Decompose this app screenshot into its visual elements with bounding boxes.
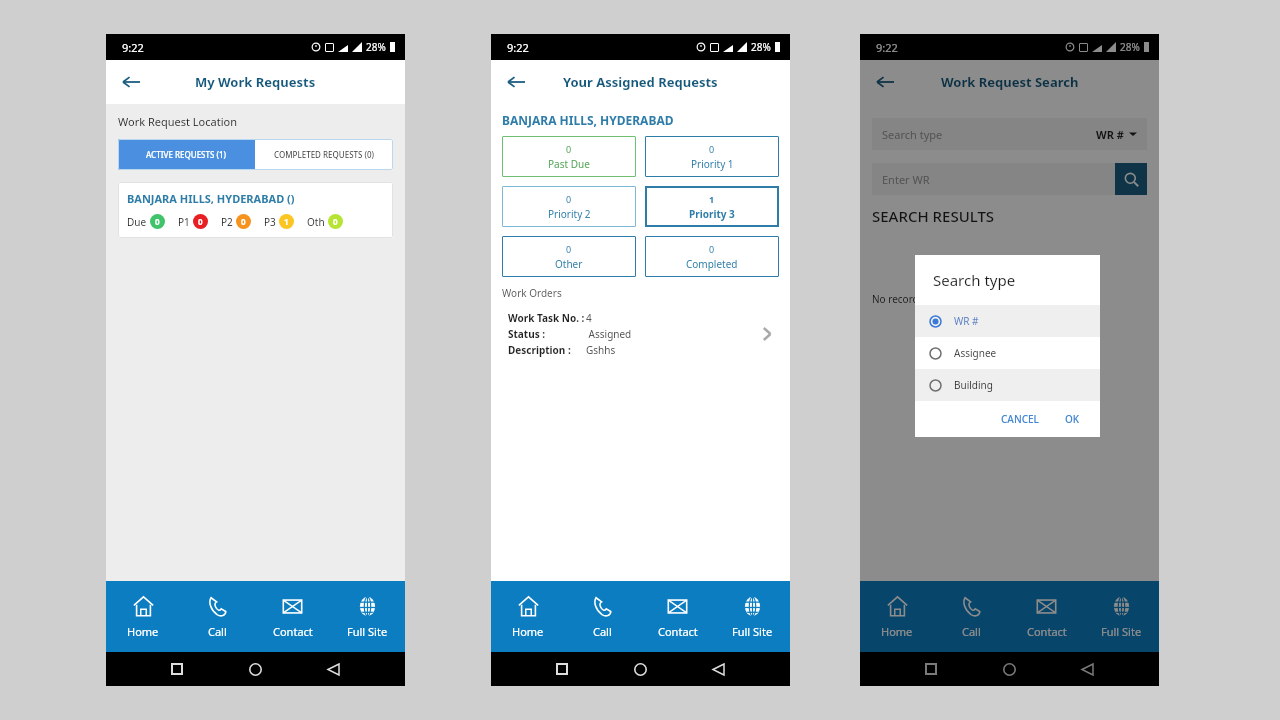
- button[interactable]: Work Task No. :: [502, 310, 779, 358]
- staticText: Oth: [307, 215, 325, 229]
- staticText: 1: [709, 193, 715, 205]
- staticText: Your Assigned Requests: [563, 73, 718, 91]
- button[interactable]: Full Site: [330, 581, 405, 652]
- staticText: Enter WR: [882, 172, 930, 187]
- staticText: Priority 2: [548, 207, 591, 221]
- button[interactable]: Full Site: [715, 581, 790, 652]
- button[interactable]: Home: [249, 663, 262, 676]
- staticText: 0: [566, 193, 572, 205]
- staticText: 9:22: [507, 40, 529, 55]
- staticText: 1: [284, 216, 289, 227]
- staticText: Due: [127, 215, 147, 229]
- staticText: 28%: [751, 40, 771, 54]
- staticText: Call: [593, 624, 612, 639]
- staticText: Contact: [273, 624, 313, 639]
- button[interactable]: 0: [502, 186, 636, 227]
- staticText: Call: [208, 624, 227, 639]
- staticText: Call: [962, 624, 981, 639]
- staticText: Priority 3: [689, 207, 735, 221]
- button[interactable]: Back: [499, 65, 533, 99]
- button[interactable]: Back: [114, 65, 148, 99]
- staticText: Completed: [686, 257, 738, 271]
- staticText: 28%: [1120, 40, 1140, 54]
- staticText: P3: [264, 215, 276, 229]
- staticText: Search type: [933, 270, 1016, 290]
- button[interactable]: Contact: [640, 581, 715, 652]
- button[interactable]: Back: [868, 65, 902, 99]
- staticText: 0: [709, 243, 715, 255]
- button[interactable]: Home: [860, 581, 934, 652]
- staticText: 0: [198, 216, 203, 227]
- staticText: Full Site: [732, 624, 773, 639]
- button[interactable]: Recents: [171, 663, 183, 675]
- button[interactable]: Search type: [872, 118, 1147, 150]
- button[interactable]: Home: [1003, 663, 1016, 676]
- button[interactable]: CANCEL: [993, 408, 1047, 430]
- staticText: Work Orders: [502, 286, 562, 300]
- staticText: Work Task No. :: [508, 311, 585, 325]
- button[interactable]: Enter WR: [872, 163, 1115, 195]
- button[interactable]: Call: [180, 581, 255, 652]
- staticText: 9:22: [876, 40, 898, 55]
- button[interactable]: 0: [645, 136, 779, 177]
- staticText: Gshhs: [586, 343, 616, 357]
- button[interactable]: OK: [1057, 408, 1088, 430]
- staticText: ACTIVE REQUESTS (1): [146, 149, 227, 160]
- button[interactable]: WR #: [915, 305, 1100, 337]
- staticText: CANCEL: [1001, 412, 1039, 426]
- staticText: Description :: [508, 343, 571, 357]
- button[interactable]: Building: [915, 369, 1100, 401]
- staticText: BANJARA HILLS, HYDERABAD (): [127, 191, 295, 206]
- button[interactable]: Contact: [1009, 581, 1084, 652]
- button[interactable]: Home: [634, 663, 647, 676]
- staticText: Contact: [658, 624, 698, 639]
- staticText: WR #: [954, 314, 979, 328]
- button[interactable]: Home: [106, 581, 180, 652]
- staticText: Full Site: [347, 624, 388, 639]
- button[interactable]: 0: [645, 236, 779, 277]
- staticText: P2: [221, 215, 233, 229]
- staticText: 0: [566, 143, 572, 155]
- button[interactable]: Back: [327, 663, 340, 676]
- button[interactable]: Full Site: [1084, 581, 1159, 652]
- staticText: Assignee: [954, 346, 997, 360]
- staticText: Priority 1: [691, 157, 734, 171]
- staticText: Building: [954, 378, 993, 392]
- staticText: 0: [566, 243, 572, 255]
- button[interactable]: Recents: [925, 663, 937, 675]
- staticText: Past Due: [548, 157, 590, 171]
- staticText: Assigned: [586, 327, 632, 341]
- button[interactable]: Search: [1115, 163, 1147, 195]
- button[interactable]: ACTIVE REQUESTS (1): [118, 139, 255, 170]
- staticText: Contact: [1027, 624, 1067, 639]
- staticText: 0: [709, 143, 715, 155]
- button[interactable]: 1: [645, 186, 779, 227]
- staticText: P1: [178, 215, 190, 229]
- staticText: Home: [881, 624, 913, 639]
- button[interactable]: Recents: [556, 663, 568, 675]
- button[interactable]: Assignee: [915, 337, 1100, 369]
- staticText: Home: [512, 624, 544, 639]
- button[interactable]: Contact: [255, 581, 330, 652]
- staticText: 0: [241, 216, 246, 227]
- button[interactable]: 0: [502, 136, 636, 177]
- staticText: WR #: [1096, 127, 1124, 142]
- button[interactable]: Back: [1081, 663, 1094, 676]
- staticText: 9:22: [122, 40, 144, 55]
- staticText: No records: [872, 292, 924, 306]
- button[interactable]: Home: [491, 581, 565, 652]
- button[interactable]: Back: [712, 663, 725, 676]
- staticText: Status :: [508, 327, 546, 341]
- staticText: Search type: [882, 127, 943, 142]
- staticText: BANJARA HILLS, HYDERABAD: [502, 112, 674, 128]
- button[interactable]: Call: [565, 581, 640, 652]
- staticText: Work Request Location: [118, 114, 237, 129]
- button[interactable]: COMPLETED REQUESTS (0): [255, 139, 393, 170]
- staticText: 0: [333, 216, 338, 227]
- button[interactable]: Call: [934, 581, 1009, 652]
- staticText: 28%: [366, 40, 386, 54]
- button[interactable]: 0: [502, 236, 636, 277]
- button[interactable]: BANJARA HILLS, HYDERABAD (): [118, 182, 393, 238]
- staticText: SEARCH RESULTS: [872, 206, 995, 226]
- staticText: OK: [1065, 412, 1080, 426]
